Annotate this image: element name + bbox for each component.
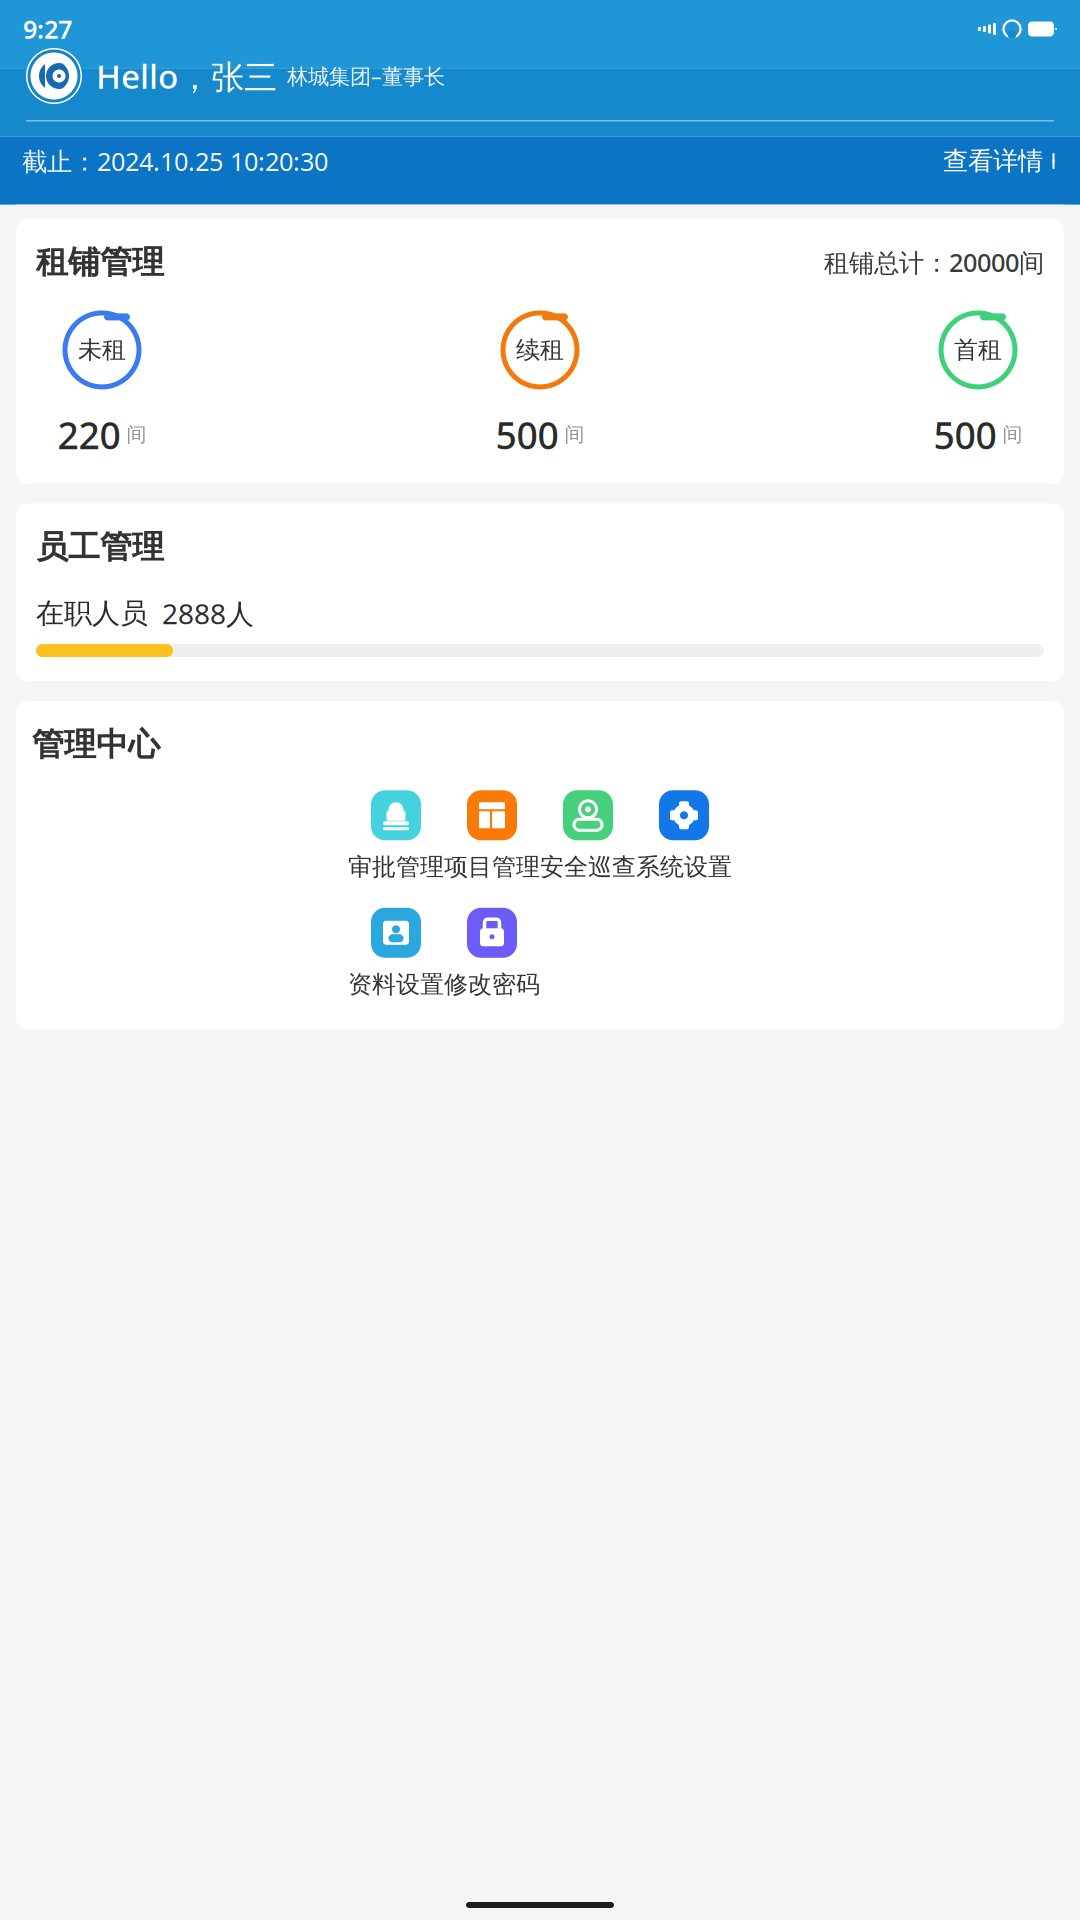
staticText: Hello，张三 [96,54,277,98]
staticText: 续租 [516,335,564,365]
staticText: 修改密码 [444,970,540,999]
staticText: 500 [495,410,558,459]
staticText: 220 [57,410,120,459]
staticText: 间 [126,422,146,447]
staticText: 审批管理 [348,852,444,882]
staticText: 查看详情 [943,145,1043,177]
button[interactable]: 资料设置 [348,908,444,999]
staticText: 租铺管理 [36,243,164,282]
staticText: 未租 [78,335,126,365]
button[interactable]: 审批管理 [348,790,444,882]
staticText: 员工管理 [36,527,164,567]
staticText: 截止：2024.10.25 10:20:30 [22,144,328,178]
button[interactable]: 修改密码 [444,908,540,999]
staticText: 林城集团–董事长 [287,62,445,90]
staticText: 安全巡查 [540,852,636,882]
staticText: 资料设置 [348,970,444,999]
staticText: 9:27 [23,12,72,46]
staticText: 系统设置 [636,852,732,882]
staticText: 管理中心 [32,725,160,764]
staticText: 500 [933,410,996,459]
staticText: 首租 [954,335,1002,365]
button[interactable]: 项目管理 [444,790,540,882]
staticText: 间 [1002,422,1022,447]
button[interactable]: 查看详情 [943,139,1058,183]
staticText: 2888人 [162,595,254,632]
staticText: 租铺总计：20000间 [824,245,1044,279]
button[interactable]: 系统设置 [636,790,732,882]
staticText: 在职人员 [36,596,148,631]
button[interactable]: 安全巡查 [540,790,636,882]
staticText: 间 [564,422,584,447]
staticText: 项目管理 [444,852,540,882]
